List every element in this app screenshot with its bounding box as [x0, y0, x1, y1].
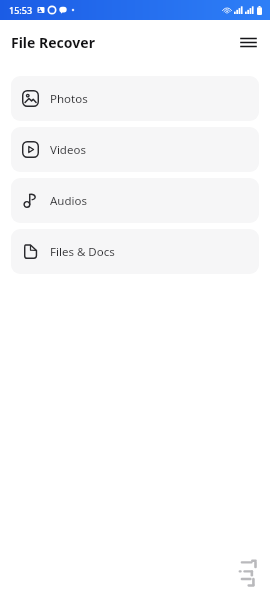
button[interactable]: Files & Docs: [11, 229, 259, 274]
staticText: Files & Docs: [50, 244, 115, 260]
staticText: File Recover: [11, 33, 95, 52]
staticText: 15:53: [9, 4, 33, 16]
button[interactable]: Audios: [11, 178, 259, 223]
button[interactable]: Menu: [234, 28, 262, 56]
staticText: Audios: [50, 193, 87, 209]
button[interactable]: Videos: [11, 127, 259, 172]
staticText: Photos: [50, 91, 88, 107]
button[interactable]: Photos: [11, 76, 259, 121]
staticText: Videos: [50, 142, 86, 158]
